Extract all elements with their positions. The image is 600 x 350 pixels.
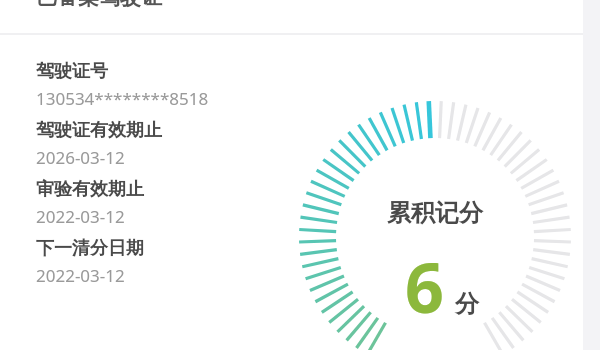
staticText: 分 <box>455 289 479 319</box>
staticText: 2022-03-12 <box>36 264 125 287</box>
staticText: 累积记分 <box>375 198 495 228</box>
staticText: 驾驶证号 <box>36 60 108 83</box>
button[interactable]: 审验有效期止 <box>36 178 296 228</box>
button[interactable]: 已备案驾驶证 <box>0 0 583 33</box>
staticText: 下一清分日期 <box>36 237 144 260</box>
button[interactable]: 下一清分日期 <box>36 237 296 287</box>
staticText: 已备案驾驶证 <box>36 0 162 10</box>
staticText: 130534********8518 <box>36 87 209 110</box>
staticText: 审验有效期止 <box>36 178 144 201</box>
staticText: 6 <box>405 240 444 333</box>
staticText: 驾驶证有效期止 <box>36 119 162 142</box>
staticText: 2022-03-12 <box>36 205 125 228</box>
button[interactable]: 驾驶证有效期止 <box>36 119 296 169</box>
other: 累积记分仪表盘 <box>0 0 583 350</box>
button[interactable]: 驾驶证号 <box>36 60 296 110</box>
staticText: 2026-03-12 <box>36 146 125 169</box>
